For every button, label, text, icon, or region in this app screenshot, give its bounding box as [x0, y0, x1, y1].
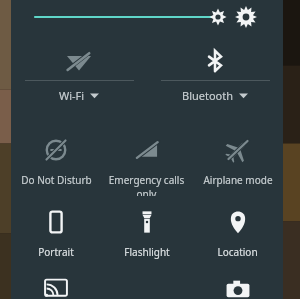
button[interactable]: Airplane mode	[192, 124, 283, 196]
staticText: Flashlight	[124, 245, 170, 259]
button[interactable]: Bluetooth	[147, 42, 283, 114]
staticText: Airplane mode	[203, 173, 273, 187]
button[interactable]: Portrait	[11, 196, 101, 268]
staticText: Emergency calls only	[103, 173, 190, 196]
button[interactable]: Auto brightness	[229, 0, 263, 34]
button[interactable]: Cast screen	[11, 268, 101, 298]
button[interactable]: Wi-Fi	[11, 42, 147, 114]
staticText: Wi-Fi	[59, 88, 85, 103]
staticText: Portrait	[38, 245, 74, 259]
button[interactable]: Brightness	[23, 0, 235, 34]
button[interactable]: Do Not Disturb	[11, 124, 101, 196]
staticText: Location	[217, 245, 258, 259]
button[interactable]: Emergency calls only	[101, 124, 192, 196]
staticText: Do Not Disturb	[21, 173, 92, 187]
button[interactable]: Location	[192, 196, 283, 268]
button[interactable]: Flashlight	[101, 196, 192, 268]
button[interactable]: Camera	[192, 268, 283, 298]
staticText: Bluetooth	[182, 88, 234, 103]
